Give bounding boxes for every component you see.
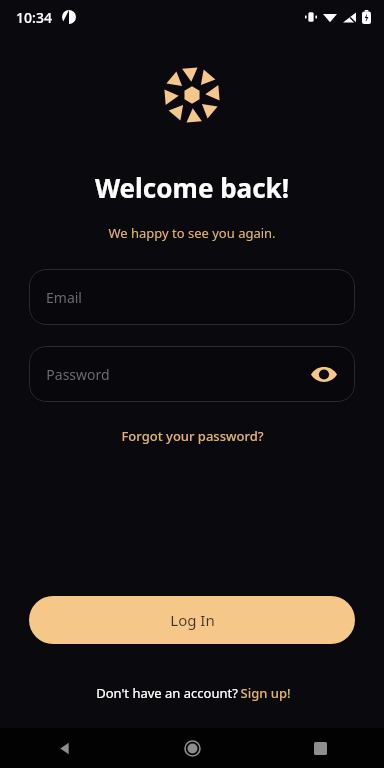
button[interactable]: Home: [128, 728, 256, 768]
staticText: Forgot your password?: [121, 427, 264, 445]
button[interactable]: Email: [29, 269, 355, 325]
staticText: Sign up!: [240, 684, 291, 702]
button[interactable]: Password: [29, 346, 355, 402]
button[interactable]: Recents: [256, 728, 384, 768]
staticText: Password: [46, 365, 110, 384]
button[interactable]: Show password: [307, 357, 341, 391]
button[interactable]: Back: [0, 728, 128, 768]
staticText: Welcome back!: [0, 170, 384, 205]
staticText: Don't have an account?: [94, 684, 240, 702]
staticText: Log In: [170, 610, 215, 630]
staticText: We happy to see you again.: [0, 224, 384, 242]
button[interactable]: Sign up!: [240, 684, 291, 702]
button[interactable]: Log In: [29, 596, 355, 644]
staticText: Email: [46, 288, 82, 307]
button[interactable]: Forgot your password?: [113, 422, 272, 450]
staticText: 10:34: [16, 8, 52, 27]
